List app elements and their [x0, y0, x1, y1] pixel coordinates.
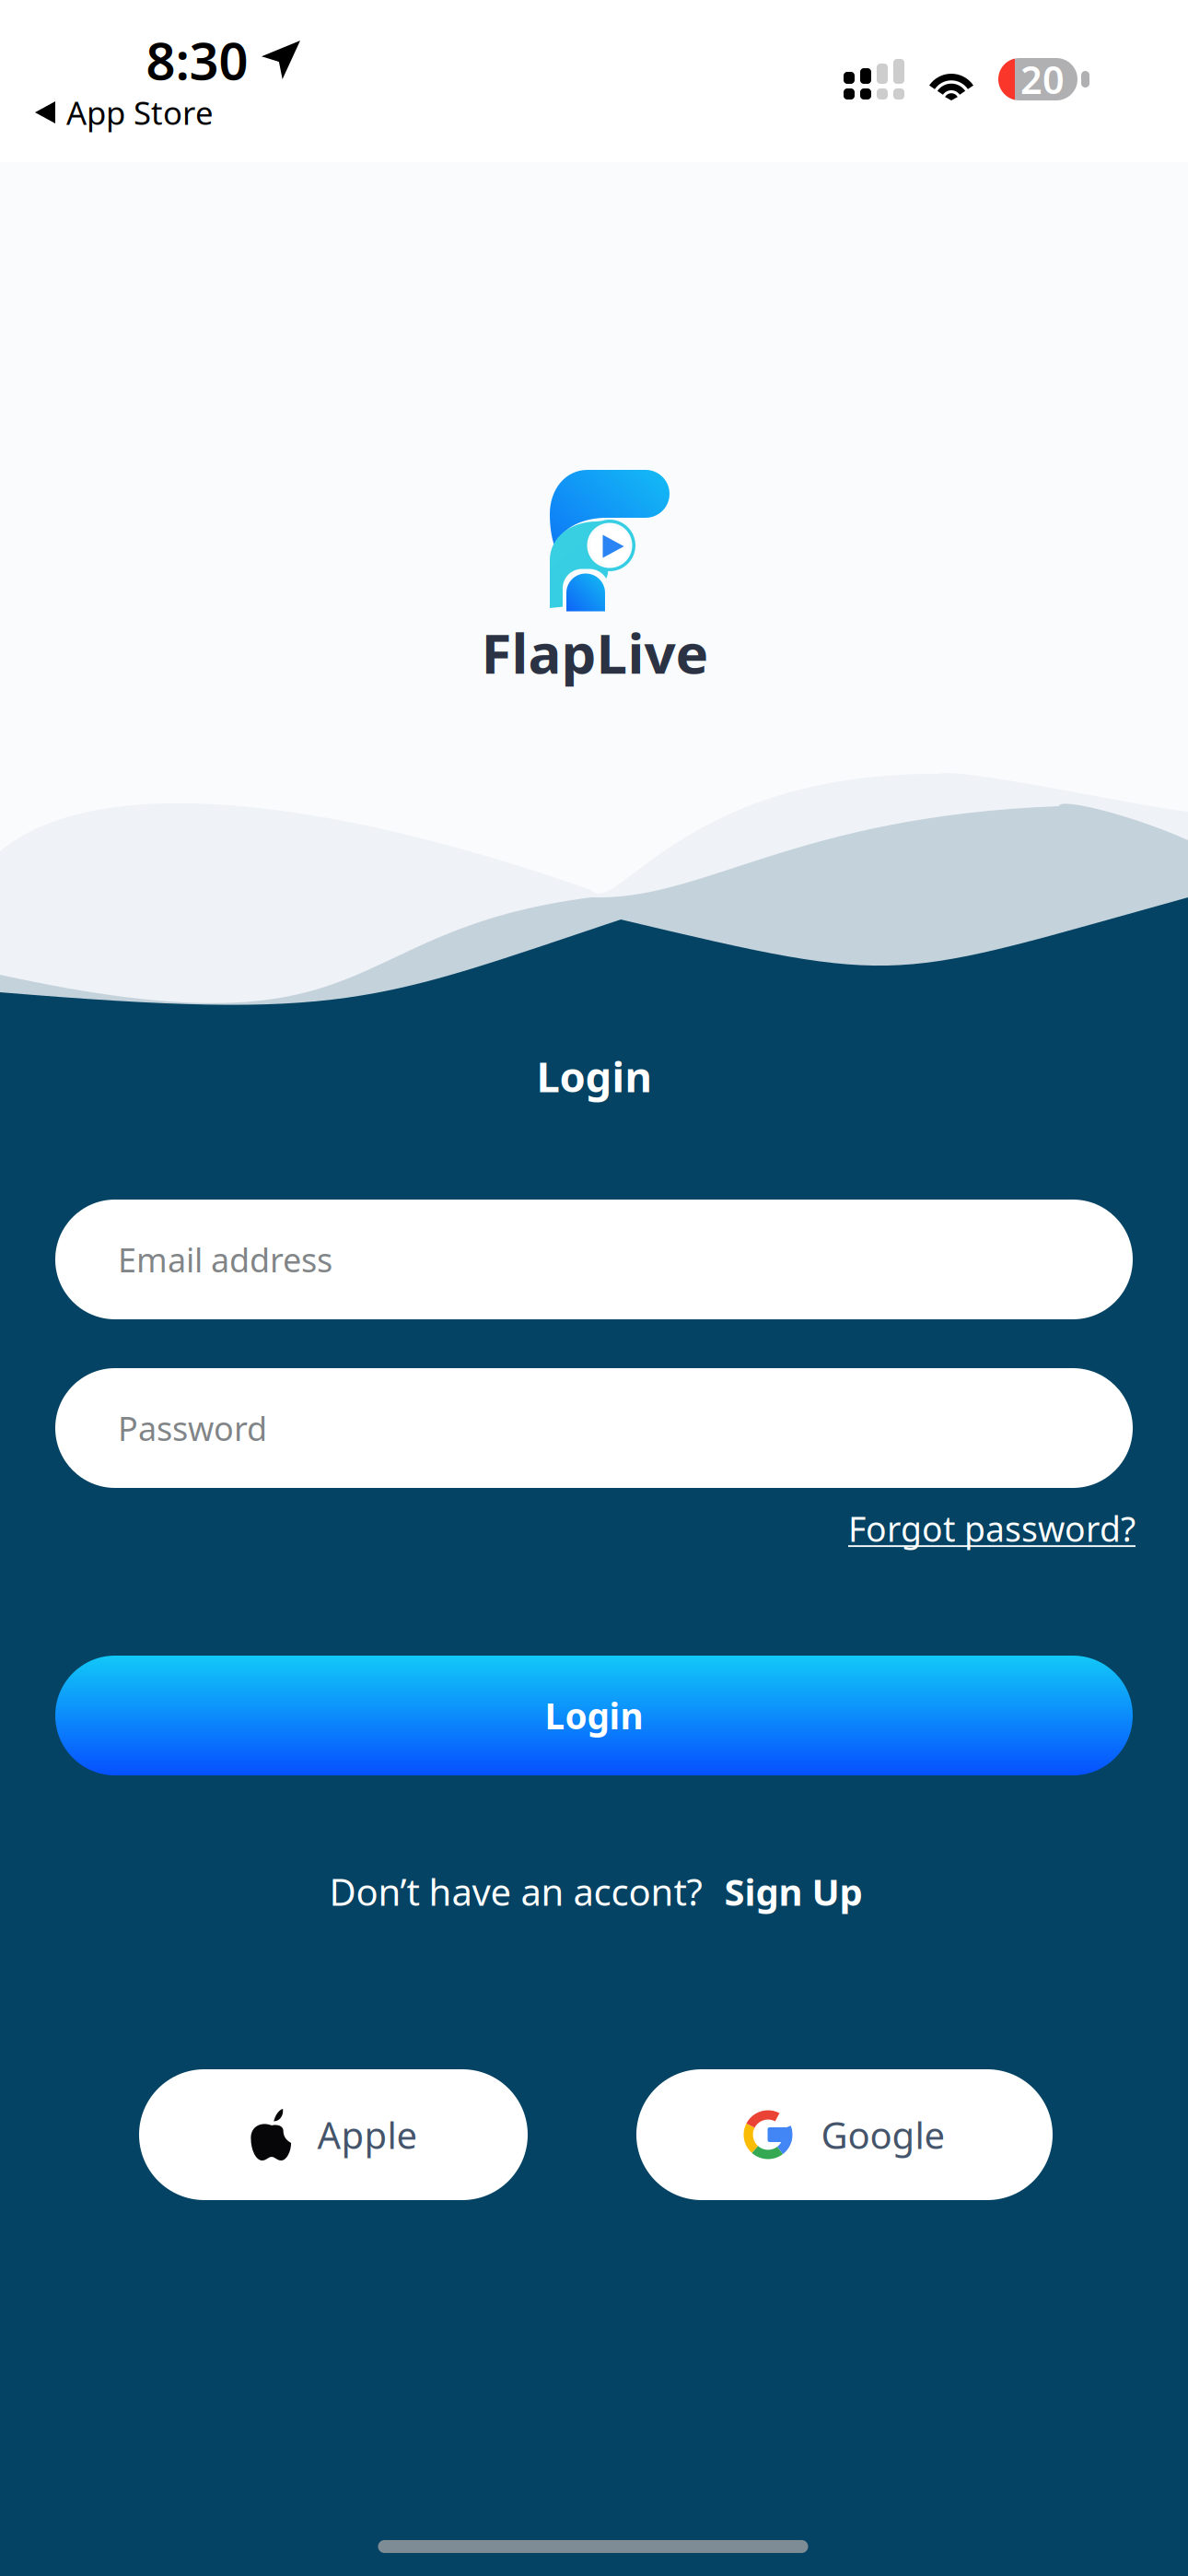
staticText: Login — [545, 1692, 643, 1739]
staticText: Password — [118, 1406, 267, 1450]
button[interactable]: Google — [636, 2069, 1053, 2200]
button[interactable]: Apple — [139, 2069, 528, 2200]
staticText: Sign Up — [724, 1867, 862, 1916]
staticText: 8:30 — [146, 26, 248, 94]
button[interactable]: Password — [55, 1368, 1133, 1488]
staticText: Forgot password? — [848, 1506, 1136, 1551]
staticText: Email address — [118, 1237, 332, 1281]
button[interactable]: Sign Up — [724, 1867, 862, 1916]
button[interactable]: Login — [55, 1656, 1133, 1775]
staticText: FlapLive — [481, 616, 709, 689]
button[interactable]: Email address — [55, 1200, 1133, 1319]
staticText: 20 — [1020, 54, 1065, 105]
staticText: Don’t have an accont? — [329, 1867, 702, 1916]
staticText: Google — [821, 2110, 945, 2159]
button[interactable]: Forgot password? — [848, 1506, 1136, 1551]
staticText: App Store — [66, 91, 214, 134]
staticText: Login — [536, 1048, 652, 1104]
staticText: Apple — [317, 2110, 418, 2159]
